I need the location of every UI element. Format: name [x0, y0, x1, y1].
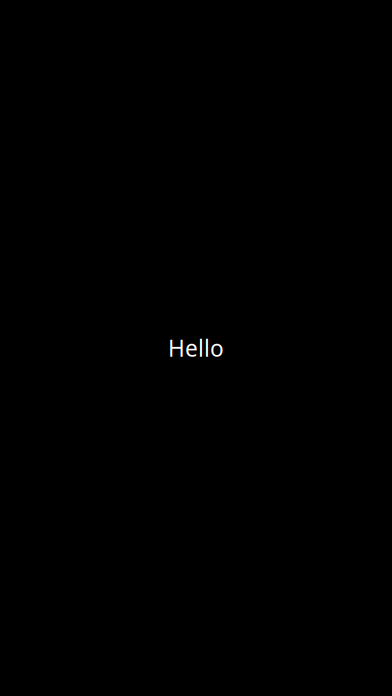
staticText: Hello: [168, 333, 224, 363]
